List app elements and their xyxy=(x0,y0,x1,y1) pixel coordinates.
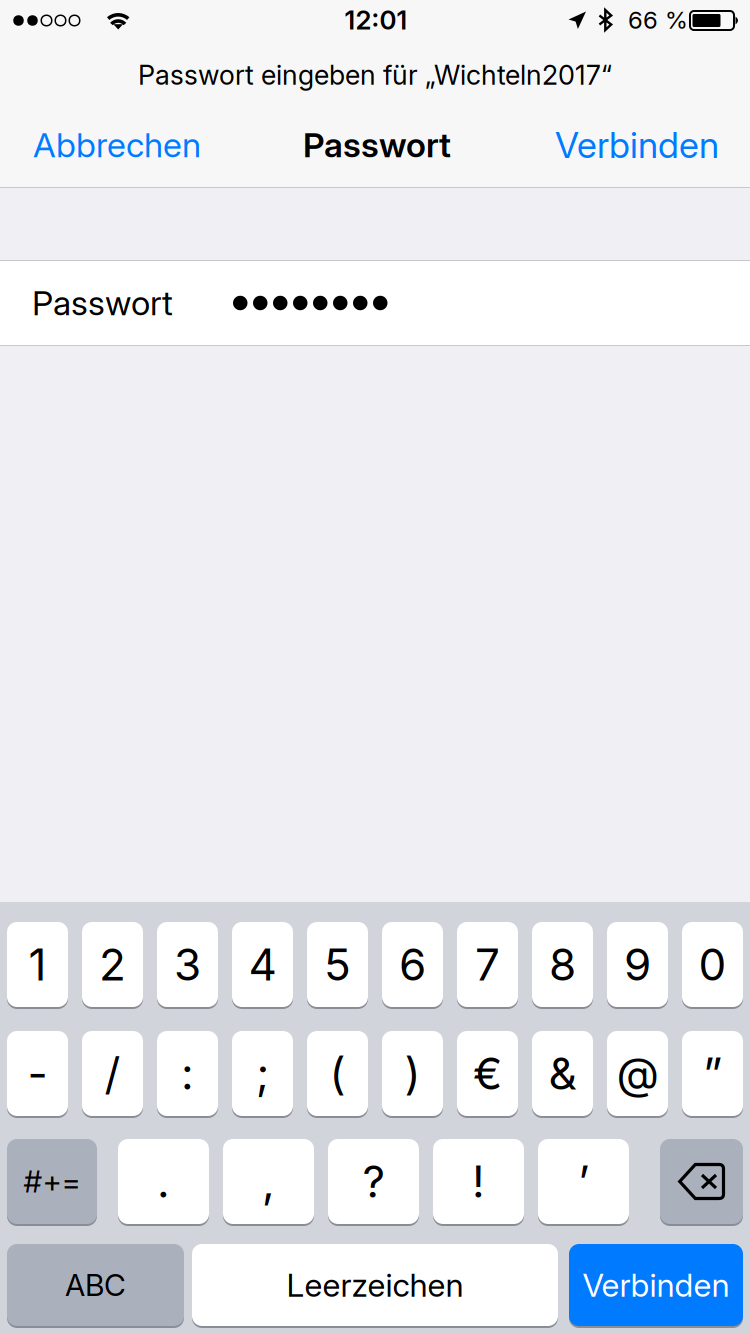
button[interactable]: , xyxy=(223,1138,314,1225)
button[interactable]: : xyxy=(157,1030,218,1117)
button[interactable]: ! xyxy=(433,1138,524,1225)
button[interactable]: 6 xyxy=(382,921,443,1008)
staticText: ; xyxy=(256,1047,269,1100)
button[interactable]: 3 xyxy=(157,921,218,1008)
button[interactable]: Verbinden xyxy=(569,1243,743,1327)
button[interactable]: ABC xyxy=(7,1243,184,1327)
button[interactable]: 8 xyxy=(532,921,593,1008)
staticText: ( xyxy=(329,1047,345,1100)
button[interactable]: Verbinden xyxy=(519,113,719,177)
button[interactable]: Löschen xyxy=(660,1138,743,1225)
staticText: @ xyxy=(616,1047,658,1100)
staticText: € xyxy=(473,1047,502,1100)
button[interactable]: ? xyxy=(328,1138,419,1225)
button[interactable]: 1 xyxy=(7,921,68,1008)
staticText: 5 xyxy=(324,938,351,991)
button[interactable]: . xyxy=(118,1138,209,1225)
staticText: ” xyxy=(703,1047,722,1100)
button[interactable]: ) xyxy=(382,1030,443,1117)
button[interactable]: Passwort xyxy=(0,261,750,345)
staticText: ABC xyxy=(65,1267,126,1303)
staticText: 6 xyxy=(399,938,426,991)
staticText: - xyxy=(27,1047,47,1100)
staticText: 8 xyxy=(549,938,576,991)
staticText: / xyxy=(104,1047,120,1100)
button[interactable]: / xyxy=(82,1030,143,1117)
staticText: ! xyxy=(472,1155,485,1208)
staticText: Abbrechen xyxy=(33,124,201,165)
staticText: #+= xyxy=(23,1163,80,1200)
button[interactable]: 2 xyxy=(82,921,143,1008)
staticText: Passwort eingeben für „Wichteln2017“ xyxy=(138,59,612,91)
staticText: 7 xyxy=(475,938,500,991)
button[interactable]: Abbrechen xyxy=(33,113,233,177)
button[interactable]: ; xyxy=(232,1030,293,1117)
button[interactable]: Leerzeichen xyxy=(192,1243,558,1327)
staticText: Verbinden xyxy=(582,1266,729,1304)
button[interactable]: 0 xyxy=(682,921,743,1008)
staticText: , xyxy=(262,1155,275,1208)
button[interactable]: € xyxy=(457,1030,518,1117)
staticText: 9 xyxy=(624,938,651,991)
button[interactable]: 5 xyxy=(307,921,368,1008)
button[interactable]: & xyxy=(532,1030,593,1117)
staticText: Leerzeichen xyxy=(286,1266,463,1304)
staticText: 0 xyxy=(698,938,726,991)
button[interactable]: @ xyxy=(607,1030,668,1117)
staticText: Passwort xyxy=(303,124,451,165)
button[interactable]: ” xyxy=(682,1030,743,1117)
button[interactable]: ( xyxy=(307,1030,368,1117)
button[interactable]: #+= xyxy=(7,1138,97,1225)
staticText: Passwort xyxy=(32,282,173,323)
staticText: : xyxy=(181,1047,194,1100)
button[interactable]: 4 xyxy=(232,921,293,1008)
staticText: & xyxy=(548,1047,576,1100)
button[interactable]: 9 xyxy=(607,921,668,1008)
staticText: 66 % xyxy=(628,5,688,34)
staticText: ’ xyxy=(578,1155,589,1208)
staticText: . xyxy=(157,1155,170,1208)
staticText: ) xyxy=(404,1047,420,1100)
staticText: 4 xyxy=(248,938,276,991)
staticText: ? xyxy=(362,1155,384,1208)
button[interactable]: - xyxy=(7,1030,68,1117)
staticText: 3 xyxy=(174,938,201,991)
staticText: Verbinden xyxy=(555,123,719,167)
button[interactable]: 7 xyxy=(457,921,518,1008)
button[interactable]: ’ xyxy=(538,1138,629,1225)
staticText: 12:01 xyxy=(344,4,407,36)
staticText: 1 xyxy=(28,938,46,991)
staticText: 2 xyxy=(99,938,126,991)
